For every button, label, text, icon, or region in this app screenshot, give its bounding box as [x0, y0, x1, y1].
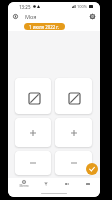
- staticText: 13:25: [19, 4, 31, 10]
- button[interactable]: [55, 78, 92, 114]
- button[interactable]: Confirm: [86, 163, 98, 175]
- button[interactable]: Tab 4: [77, 178, 98, 190]
- button[interactable]: [55, 118, 92, 147]
- button[interactable]: Tab 3: [56, 178, 77, 190]
- staticText: 1 июля 2022 г.: [29, 24, 60, 30]
- staticText: Моя: [25, 13, 37, 21]
- button[interactable]: 1 июля 2022 г.: [24, 23, 65, 30]
- button[interactable]: [55, 151, 92, 175]
- button[interactable]: [15, 118, 51, 147]
- staticText: Меню: [19, 184, 29, 188]
- button[interactable]: [15, 151, 51, 175]
- button[interactable]: Tab 2: [35, 178, 56, 190]
- staticText: 100%: [77, 4, 88, 9]
- button[interactable]: Меню: [13, 178, 35, 190]
- button[interactable]: Settings: [87, 11, 98, 22]
- button[interactable]: Info: [10, 11, 21, 22]
- button[interactable]: [15, 78, 51, 114]
